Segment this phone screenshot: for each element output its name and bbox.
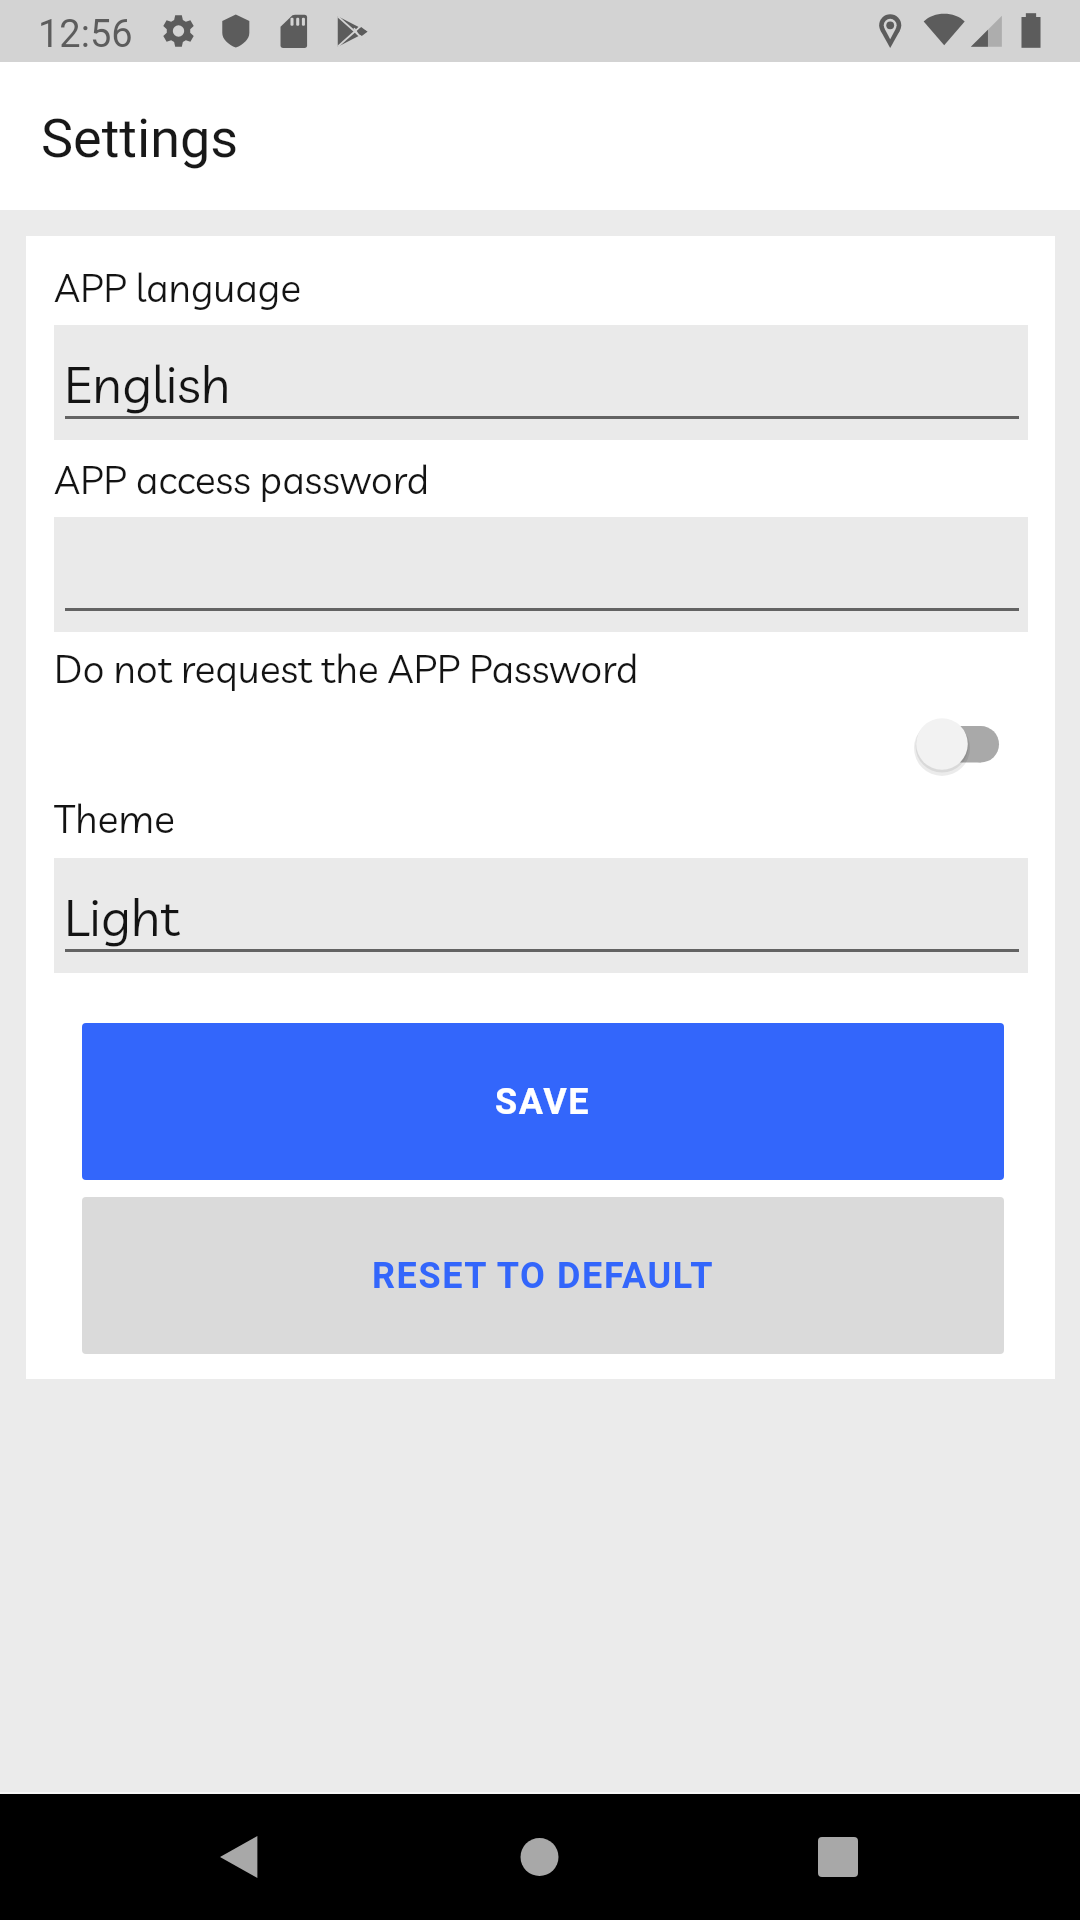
staticText: APP language (54, 263, 302, 312)
staticText: Theme (54, 794, 175, 843)
button[interactable]: APP language (54, 325, 1028, 440)
staticText: Light (64, 884, 180, 949)
staticText: RESET TO DEFAULT (372, 1255, 715, 1297)
button[interactable]: Theme (54, 858, 1028, 973)
staticText: SAVE (495, 1081, 591, 1123)
staticText: Do not request the APP Password (54, 644, 639, 693)
staticText: English (64, 351, 231, 416)
button[interactable]: SAVE (82, 1023, 1004, 1180)
staticText: Settings (41, 107, 239, 170)
button[interactable]: Do not request the APP password toggle (896, 704, 1014, 784)
button[interactable]: Recent apps (720, 1794, 1080, 1920)
button[interactable]: Back (0, 1794, 360, 1920)
button[interactable]: Home (360, 1794, 720, 1920)
button[interactable]: APP access password (54, 517, 1028, 632)
staticText: 12:56 (38, 12, 133, 57)
staticText: APP access password (54, 455, 429, 504)
button[interactable]: RESET TO DEFAULT (82, 1197, 1004, 1354)
